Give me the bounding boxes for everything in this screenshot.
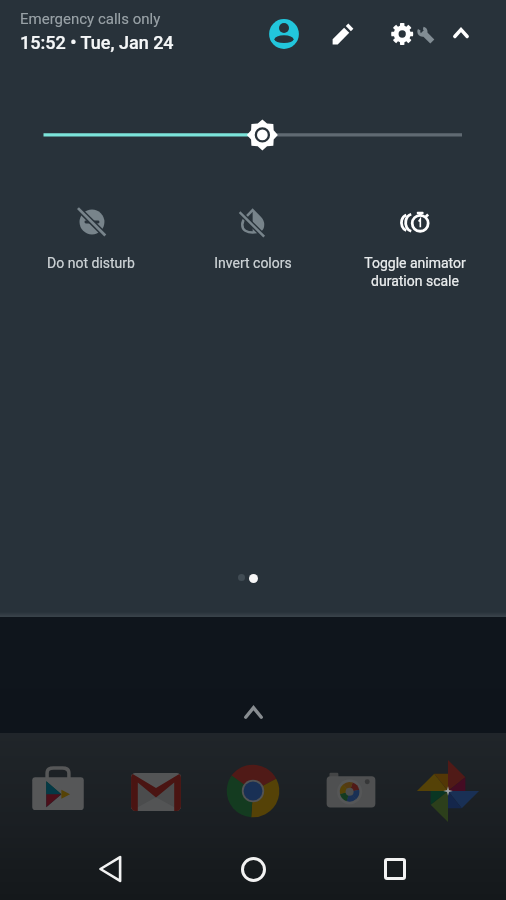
button[interactable]: Toggle animator duration scale — [334, 208, 496, 289]
button[interactable]: Brightness — [0, 115, 506, 155]
button[interactable]: Recents — [369, 843, 421, 895]
button[interactable]: Camera — [323, 763, 379, 819]
staticText: Do not disturb — [47, 255, 135, 271]
button[interactable]: Back — [85, 843, 137, 895]
button[interactable]: Photos — [420, 763, 476, 819]
button[interactable]: Open app drawer — [0, 692, 506, 732]
button[interactable]: Chrome — [225, 763, 281, 819]
staticText: Toggle animator duration scale — [340, 255, 490, 289]
staticText: Invert colors — [214, 255, 292, 271]
button[interactable]: Invert colors — [172, 208, 334, 271]
button[interactable]: Play Store — [30, 763, 86, 819]
button[interactable]: User — [262, 12, 306, 56]
staticText: Emergency calls only — [20, 10, 161, 28]
button[interactable]: Do not disturb — [10, 208, 172, 271]
button[interactable]: Gmail — [128, 763, 184, 819]
button[interactable]: Collapse — [441, 13, 481, 53]
button[interactable]: Home — [227, 843, 279, 895]
button[interactable]: Edit — [323, 14, 363, 54]
button[interactable]: Settings — [382, 7, 436, 61]
staticText: 15:52 • Tue, Jan 24 — [20, 32, 174, 53]
